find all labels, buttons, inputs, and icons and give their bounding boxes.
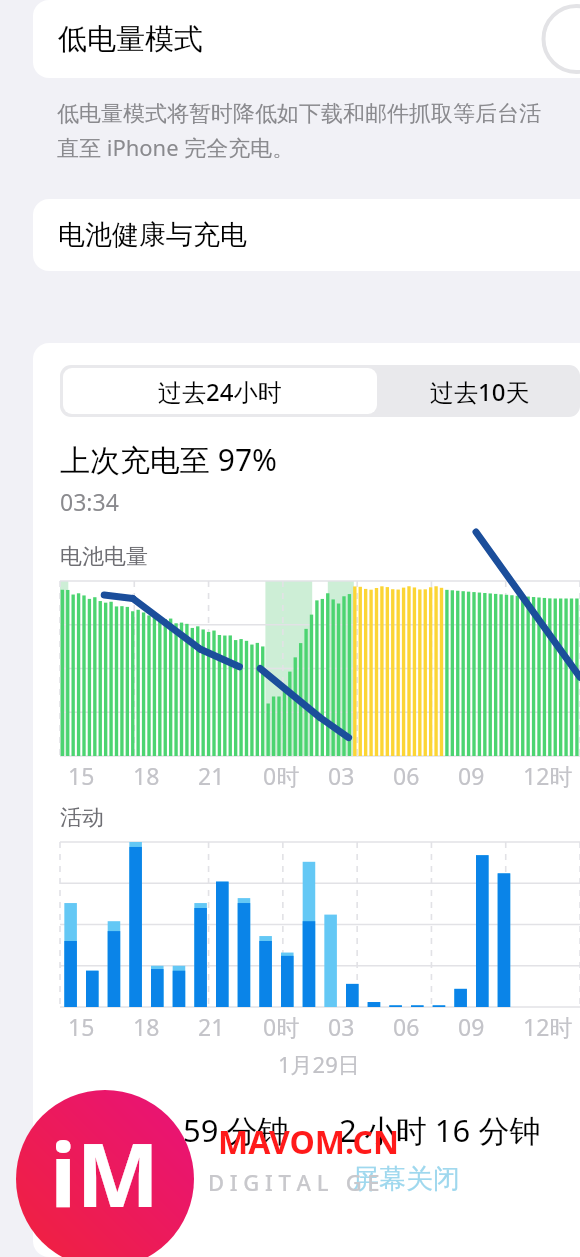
staticText: 21 <box>198 760 225 791</box>
staticText: 03:34 <box>60 486 119 517</box>
staticText: 1月29日 <box>278 1049 360 1079</box>
staticText: 06 <box>393 760 420 791</box>
staticText: 15 <box>68 760 95 791</box>
staticText: 低电量模式将暂时降低如下载和邮件抓取等后台活 <box>57 100 541 128</box>
staticText: 03 <box>328 760 355 791</box>
staticText: 上次充电至 97% <box>60 439 278 480</box>
button[interactable]: 过去24小时 <box>63 368 377 414</box>
staticText: MAVOM.CN <box>218 1120 399 1164</box>
staticText: 直至 iPhone 完全充电。 <box>57 132 295 162</box>
staticText: 0时 <box>263 1011 300 1042</box>
staticText: 21 <box>198 1011 225 1042</box>
staticText: 电池电量 <box>60 543 148 571</box>
staticText: D I G I T A L G E <box>208 1167 380 1197</box>
staticText: 06 <box>393 1011 420 1042</box>
staticText: 59 分钟 <box>183 1109 289 1151</box>
staticText: 09 <box>458 1011 485 1042</box>
staticText: 12时 <box>523 760 573 791</box>
staticText: 低电量模式 <box>58 21 203 58</box>
staticText: 03 <box>328 1011 355 1042</box>
staticText: 18 <box>133 1011 160 1042</box>
staticText: iM <box>50 1113 160 1233</box>
staticText: 15 <box>68 1011 95 1042</box>
button[interactable]: 过去10天 <box>380 365 580 417</box>
staticText: 09 <box>458 760 485 791</box>
other: 低电量模式开关 <box>510 4 580 74</box>
staticText: 2 小时 16 分钟 <box>339 1109 541 1151</box>
staticText: 12时 <box>523 1011 573 1042</box>
staticText: 屏幕关闭 <box>352 1162 460 1196</box>
button[interactable]: 电池健康与充电 <box>33 199 580 271</box>
staticText: 电池健康与充电 <box>58 218 247 252</box>
button[interactable]: 低电量模式 <box>33 0 580 78</box>
staticText: 活动 <box>60 804 104 832</box>
staticText: 过去10天 <box>430 375 530 408</box>
staticText: 过去24小时 <box>158 375 282 408</box>
staticText: 0时 <box>263 760 300 791</box>
staticText: 18 <box>133 760 160 791</box>
